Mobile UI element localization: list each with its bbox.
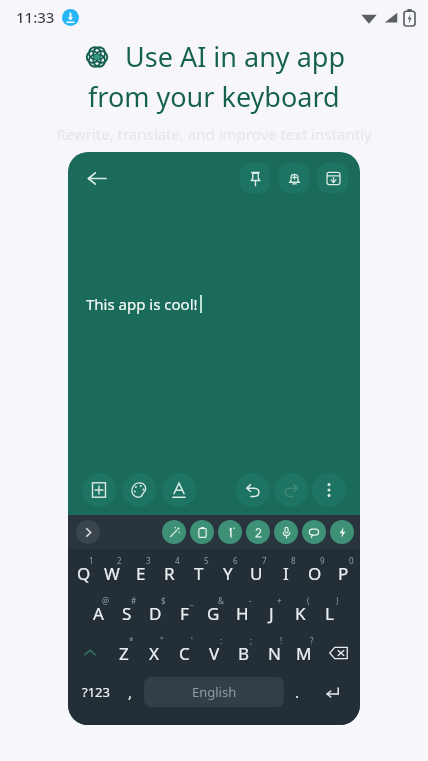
staticText: O [308, 562, 322, 585]
button[interactable]: P [329, 553, 358, 593]
button[interactable]: M [289, 633, 319, 673]
staticText: Rewrite, translate, and improve text ins… [56, 124, 372, 144]
staticText: T [194, 562, 204, 585]
button[interactable]: More options [312, 473, 346, 507]
staticText: 1 [89, 555, 94, 566]
button[interactable]: S [112, 593, 141, 633]
button[interactable]: K [286, 593, 315, 633]
staticText: . [295, 682, 300, 702]
button[interactable]: . [284, 673, 311, 711]
staticText: Z [119, 642, 129, 665]
staticText: Y [223, 562, 233, 585]
staticText: 8 [291, 555, 296, 566]
button[interactable]: Translate [218, 520, 242, 544]
staticText: 0 [349, 555, 354, 566]
staticText: N [268, 642, 281, 665]
button[interactable]: T [184, 553, 213, 593]
staticText: ?123 [82, 683, 110, 701]
staticText: 5 [204, 555, 209, 566]
staticText: 11:33 [16, 7, 55, 27]
button[interactable]: Shift [70, 633, 109, 673]
staticText: 4 [175, 555, 180, 566]
staticText: X [149, 642, 159, 665]
staticText: This app is cool! [86, 294, 198, 314]
staticText: + [277, 595, 282, 606]
staticText: R [164, 562, 175, 585]
staticText: 9 [320, 555, 325, 566]
staticText: English [192, 683, 237, 701]
button[interactable]: Y [213, 553, 242, 593]
button[interactable]: ?123 [74, 673, 117, 711]
button[interactable]: Redo [274, 473, 308, 507]
button[interactable]: H [228, 593, 257, 633]
staticText: # [131, 595, 137, 606]
staticText: C [179, 642, 190, 665]
button[interactable]: F [170, 593, 199, 633]
staticText: W [104, 562, 120, 585]
staticText: 2 [117, 555, 122, 566]
staticText: E [136, 562, 146, 585]
button[interactable]: A [84, 593, 112, 633]
button[interactable]: Quick action [330, 520, 354, 544]
button[interactable]: Chat [302, 520, 326, 544]
staticText: 3 [146, 555, 151, 566]
staticText: ( [307, 595, 310, 606]
staticText: ? [310, 635, 314, 646]
staticText: 7 [262, 555, 267, 566]
button[interactable]: AI assist [162, 520, 186, 544]
button[interactable]: U [242, 553, 271, 593]
button[interactable]: Palette [122, 473, 156, 507]
button[interactable]: B [229, 633, 259, 673]
staticText: D [149, 602, 162, 625]
button[interactable]: W [98, 553, 126, 593]
staticText: L [325, 602, 334, 625]
button[interactable]: Q [70, 553, 98, 593]
button[interactable]: Back [80, 162, 112, 194]
button[interactable]: Backspace [319, 633, 358, 673]
staticText: H [236, 602, 249, 625]
staticText: A [93, 602, 104, 625]
staticText: G [207, 602, 220, 625]
staticText: & [218, 595, 224, 606]
button[interactable]: N [259, 633, 289, 673]
button[interactable]: Format [162, 473, 196, 507]
button[interactable]: Undo [236, 473, 270, 507]
button[interactable]: Alternate [246, 520, 270, 544]
button[interactable]: L [315, 593, 344, 633]
staticText: * [129, 635, 134, 646]
staticText: Use AI in any app [125, 38, 345, 75]
button[interactable]: G [199, 593, 228, 633]
button[interactable]: O [300, 553, 329, 593]
staticText: ' [191, 635, 193, 646]
button[interactable]: , [117, 673, 144, 711]
staticText: K [295, 602, 306, 625]
button[interactable]: Archive [318, 163, 348, 193]
staticText: F [180, 602, 189, 625]
button[interactable]: Reminder [279, 163, 309, 193]
button[interactable]: D [141, 593, 170, 633]
button[interactable]: Pin [240, 163, 270, 193]
button[interactable]: I [271, 553, 300, 593]
button[interactable]: V [199, 633, 229, 673]
button[interactable]: Clipboard [190, 520, 214, 544]
button[interactable]: X [139, 633, 169, 673]
button[interactable]: Space [144, 677, 284, 707]
staticText: - [249, 595, 252, 606]
staticText: V [209, 642, 220, 665]
staticText: ! [280, 635, 283, 646]
staticText: _ [190, 595, 194, 606]
staticText: J [269, 602, 274, 625]
button[interactable]: R [155, 553, 184, 593]
button[interactable]: Expand toolbar [76, 520, 100, 544]
button[interactable]: Voice input [274, 520, 298, 544]
staticText: @ [102, 595, 110, 606]
button[interactable]: J [257, 593, 286, 633]
staticText: M [296, 642, 312, 665]
button[interactable]: Add [82, 473, 116, 507]
button[interactable]: Z [109, 633, 139, 673]
button[interactable]: Enter [311, 673, 354, 711]
staticText: $ [161, 595, 166, 606]
staticText: 6 [233, 555, 238, 566]
button[interactable]: C [169, 633, 199, 673]
button[interactable]: E [126, 553, 155, 593]
